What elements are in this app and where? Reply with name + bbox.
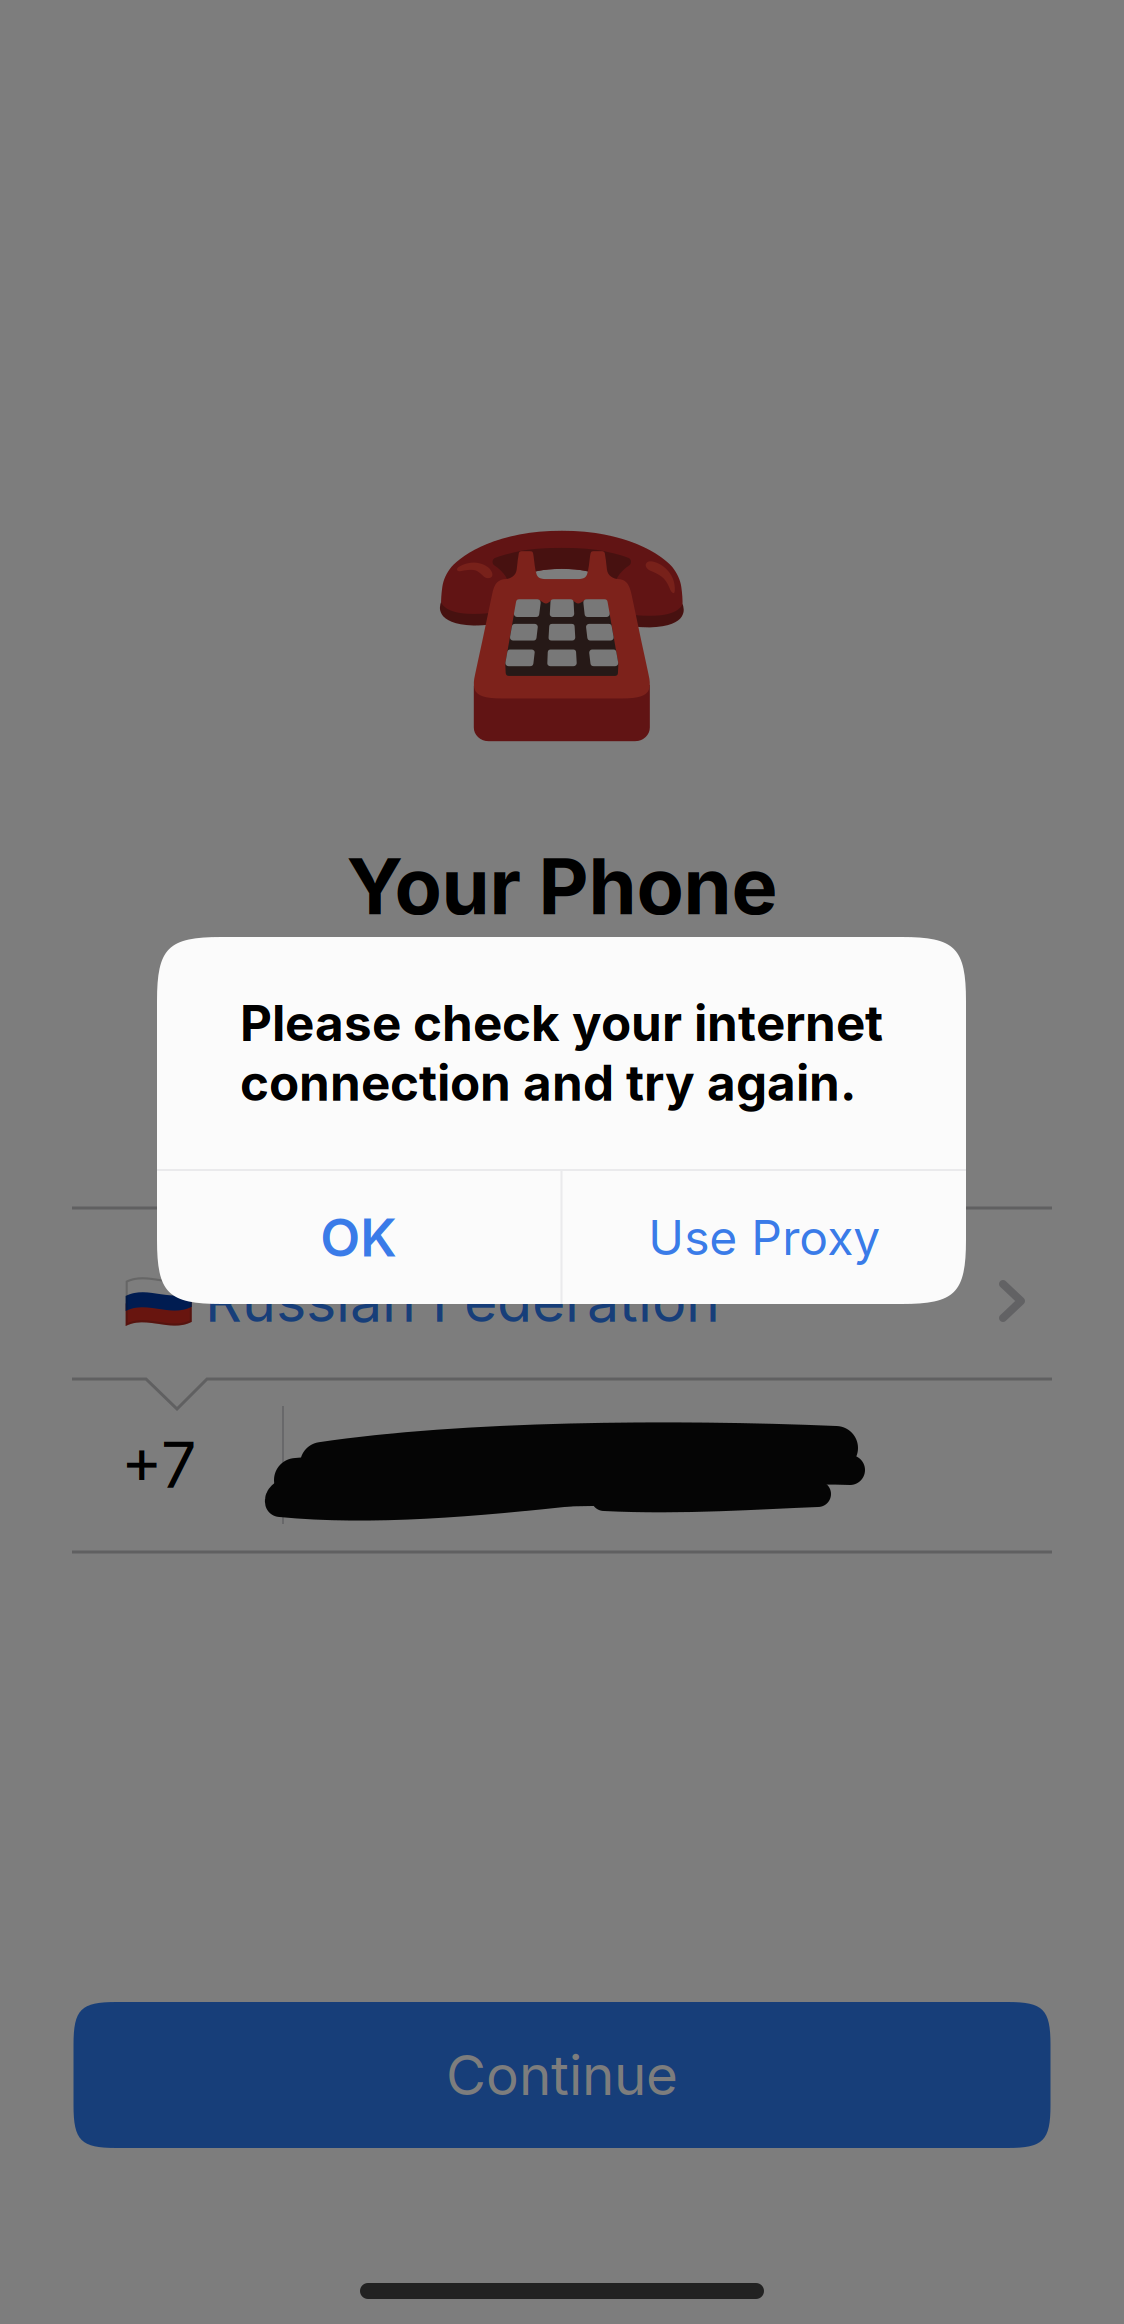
staticText: Use Proxy	[648, 1208, 880, 1267]
button[interactable]: OK	[157, 1171, 560, 1304]
staticText: ☎️	[429, 499, 695, 749]
button[interactable]: Continue	[73, 2002, 1050, 2148]
staticText: OK	[320, 1206, 397, 1269]
staticText: 🇷🇺	[122, 1267, 193, 1335]
staticText: +7	[121, 1427, 196, 1503]
button[interactable]: Use Proxy	[562, 1171, 966, 1304]
staticText: Russian Federation	[205, 1266, 720, 1336]
button[interactable]: 🇷🇺	[117, 1217, 1042, 1385]
staticText: Please check your internet connection an…	[240, 993, 883, 1113]
staticText: Continue	[446, 2042, 678, 2108]
staticText: Your Phone	[346, 839, 777, 933]
button[interactable]: Phone number	[121, 1380, 1046, 1550]
